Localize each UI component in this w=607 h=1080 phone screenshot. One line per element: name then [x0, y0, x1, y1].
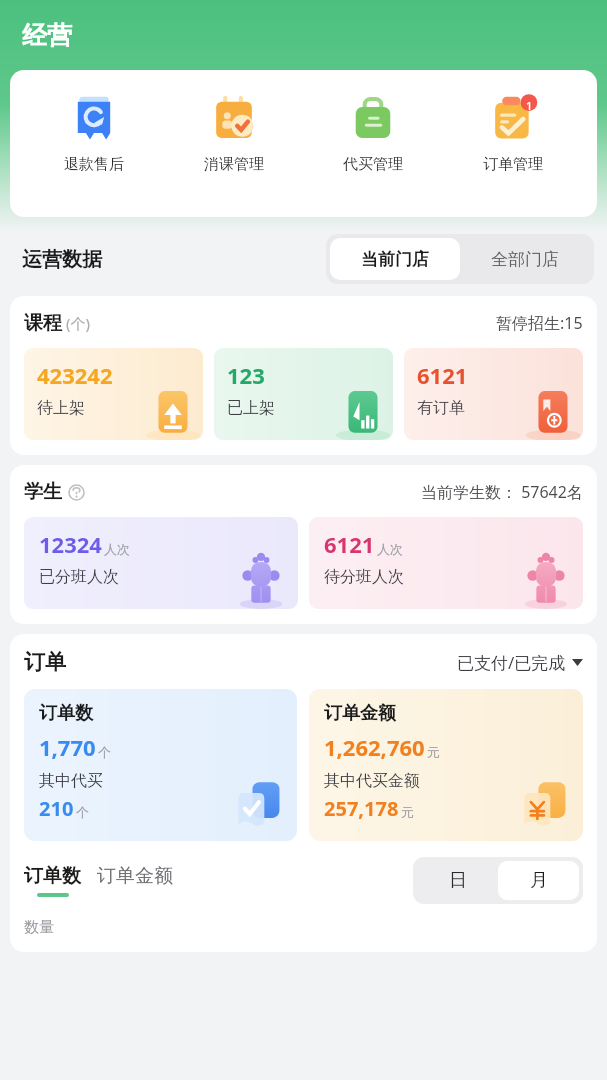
staticText: 个 — [76, 804, 89, 820]
staticText: 经营 — [22, 20, 72, 51]
staticText: 423242 — [37, 360, 113, 390]
button[interactable]: 订单金额 — [309, 689, 583, 841]
button[interactable]: 423242 — [24, 348, 203, 440]
other: 订单管理 — [486, 92, 540, 146]
staticText: 月 — [530, 869, 548, 892]
button[interactable]: 退款售后 — [39, 91, 149, 174]
staticText: 待分班人次 — [324, 567, 404, 587]
staticText: 消课管理 — [204, 155, 264, 174]
staticText: 全部门店 — [491, 249, 559, 270]
other: 消课管理 — [207, 92, 261, 146]
staticText: 1,262,760 — [324, 732, 425, 762]
staticText: 当前学生数： 57642名 — [421, 481, 583, 503]
button[interactable]: 已支付/已完成 — [457, 651, 583, 674]
staticText: 订单管理 — [483, 155, 543, 174]
button[interactable]: 6121 — [404, 348, 583, 440]
button[interactable]: 月 — [498, 861, 579, 900]
staticText: 订单金额 — [97, 864, 173, 888]
button[interactable]: 订单数 — [24, 864, 81, 897]
staticText: 6121 — [324, 529, 375, 559]
button[interactable]: 代买管理 — [318, 91, 428, 174]
staticText: (个) — [66, 313, 91, 333]
staticText: 课程 — [24, 311, 62, 335]
staticText: 已上架 — [227, 398, 275, 418]
staticText: 订单数 — [39, 702, 93, 725]
staticText: 订单数 — [24, 864, 81, 888]
button[interactable]: 12324 — [24, 517, 298, 609]
other: 退款售后 — [67, 92, 121, 146]
staticText: 退款售后 — [64, 155, 124, 174]
button[interactable]: 全部门店 — [460, 238, 590, 280]
staticText: 有订单 — [417, 398, 465, 418]
staticText: 日 — [449, 869, 467, 892]
staticText: 订单 — [24, 649, 66, 675]
button[interactable]: 日 — [417, 861, 498, 900]
staticText: 人次 — [104, 541, 130, 557]
button[interactable]: 订单金额 — [97, 864, 173, 897]
staticText: 已分班人次 — [39, 567, 119, 587]
button[interactable]: 订单管理 — [458, 91, 568, 174]
staticText: 个 — [98, 744, 111, 760]
staticText: 1 — [526, 98, 533, 113]
staticText: 123 — [227, 360, 265, 390]
staticText: 257,178 — [324, 795, 399, 822]
staticText: 当前门店 — [361, 249, 429, 270]
staticText: 已支付/已完成 — [457, 651, 566, 674]
button[interactable]: 123 — [214, 348, 393, 440]
staticText: 代买管理 — [343, 155, 403, 174]
button[interactable]: 消课管理 — [179, 91, 289, 174]
staticText: 数量 — [24, 918, 54, 937]
staticText: 暂停招生:15 — [496, 312, 583, 334]
staticText: 6121 — [417, 360, 468, 390]
staticText: 1,770 — [39, 732, 96, 762]
staticText: 210 — [39, 795, 74, 822]
staticText: 运营数据 — [22, 247, 102, 272]
staticText: 元 — [401, 804, 414, 820]
staticText: 订单金额 — [324, 702, 396, 725]
staticText: 学生 — [24, 480, 62, 504]
button[interactable]: 订单数 — [24, 689, 297, 841]
staticText: 待上架 — [37, 398, 85, 418]
staticText: 其中代买金额 — [324, 771, 420, 791]
staticText: 元 — [427, 744, 440, 760]
button[interactable]: 6121 — [309, 517, 583, 609]
staticText: 其中代买 — [39, 771, 103, 791]
staticText: 12324 — [39, 529, 102, 559]
other: 代买管理 — [346, 92, 400, 146]
button[interactable]: 当前门店 — [330, 238, 460, 280]
staticText: 人次 — [377, 541, 403, 557]
